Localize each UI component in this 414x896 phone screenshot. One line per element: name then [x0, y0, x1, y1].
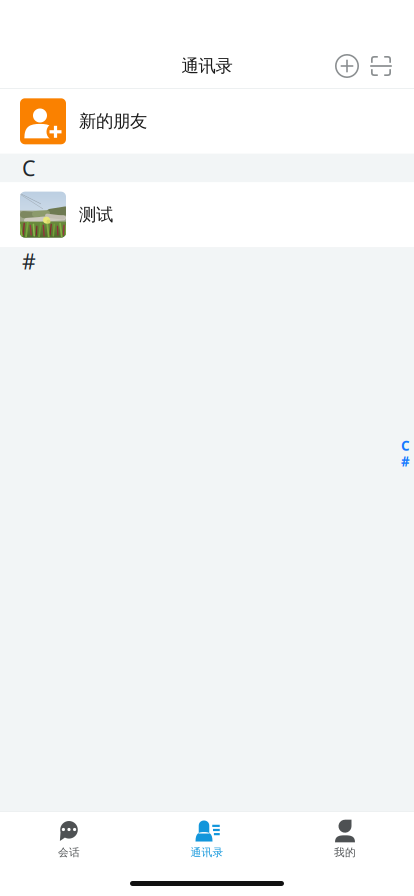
staticText: 新的朋友	[79, 111, 147, 132]
staticText: C	[22, 154, 35, 182]
button[interactable]: 我的	[276, 812, 414, 862]
staticText: C	[401, 437, 410, 454]
button[interactable]: Scan	[364, 44, 398, 88]
button[interactable]: 新的朋友	[0, 89, 414, 154]
button[interactable]: 通讯录	[138, 812, 276, 862]
staticText: 我的	[334, 846, 356, 859]
button[interactable]: 测试	[0, 182, 414, 247]
staticText: 通讯录	[190, 846, 223, 859]
staticText: 会话	[58, 846, 80, 859]
staticText: #	[401, 452, 410, 470]
button[interactable]: 会话	[0, 812, 138, 862]
button[interactable]: Add	[330, 44, 364, 88]
staticText: #	[22, 247, 36, 275]
staticText: 测试	[79, 204, 113, 225]
staticText: 通讯录	[181, 55, 232, 77]
